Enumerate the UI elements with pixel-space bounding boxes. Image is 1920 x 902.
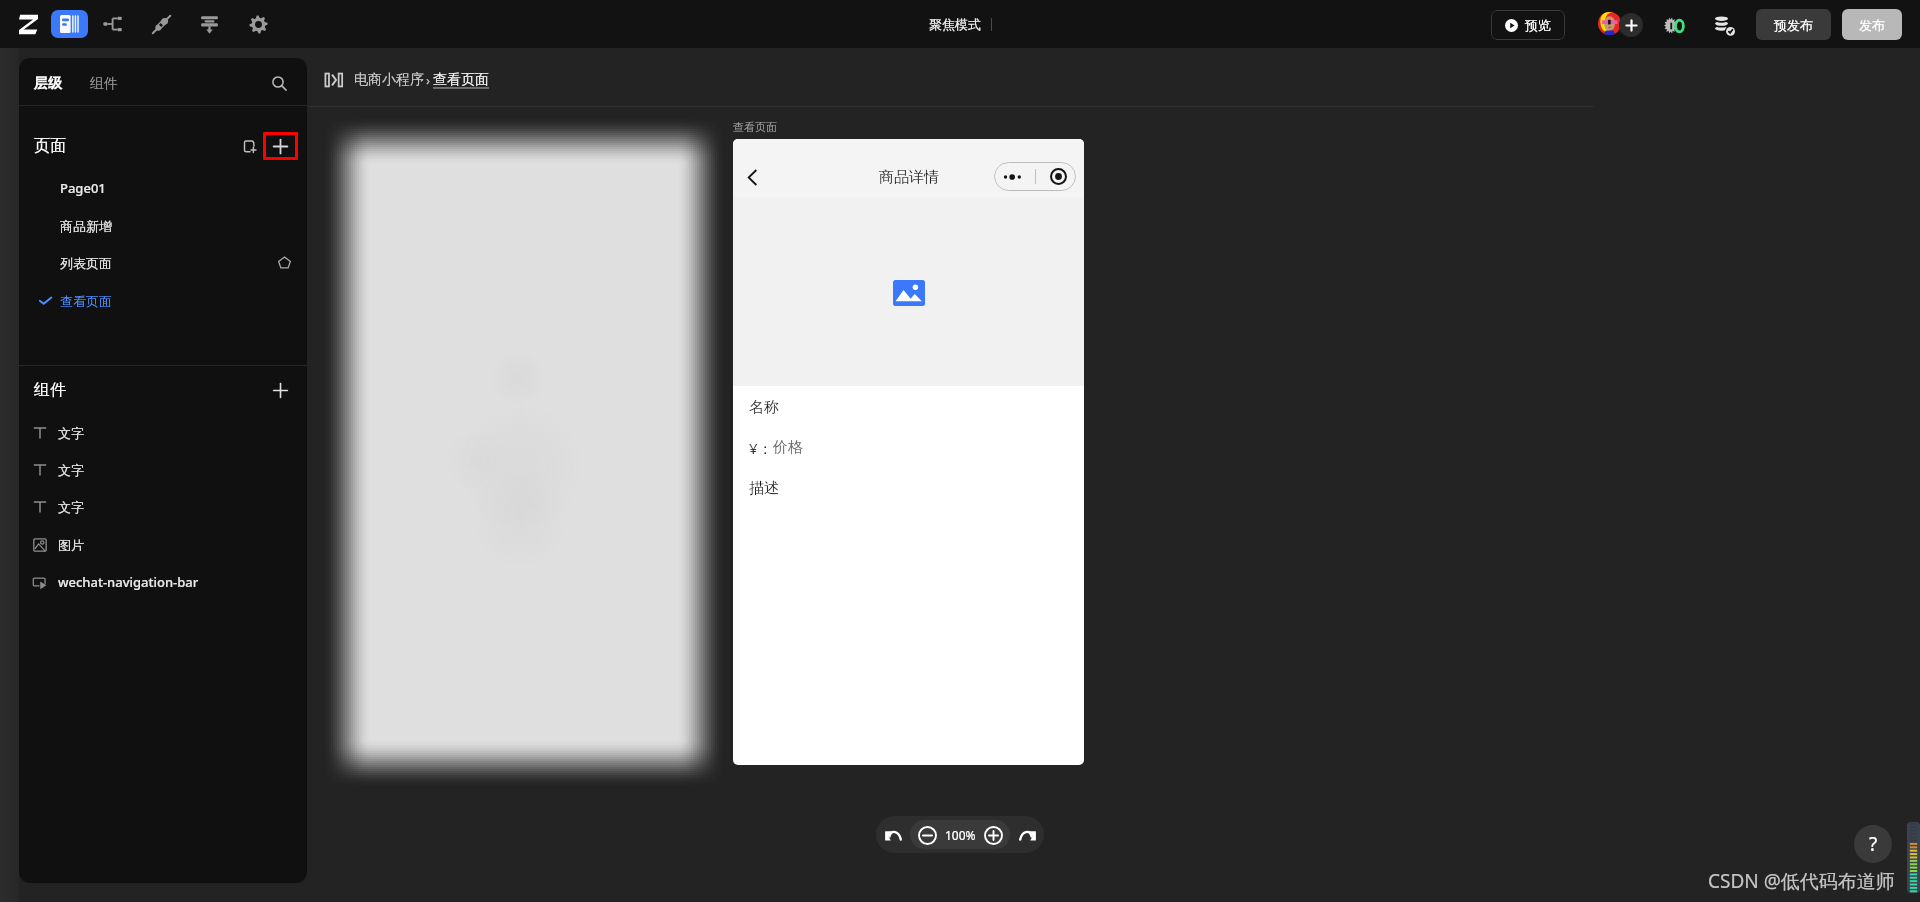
button[interactable]: wechat-navigation-bar xyxy=(19,563,307,600)
button[interactable]: 文字 xyxy=(19,451,307,488)
button[interactable]: Connections xyxy=(147,10,175,38)
button[interactable]: Members xyxy=(1598,12,1643,38)
staticText: 预览 xyxy=(1525,17,1551,33)
staticText: 文字 xyxy=(58,462,84,478)
staticText: ¥： xyxy=(749,438,773,458)
staticText: 组件 xyxy=(34,380,66,400)
staticText: Page01 xyxy=(60,179,106,197)
button[interactable]: 文字 xyxy=(19,488,307,525)
button[interactable]: 列表页面 xyxy=(19,244,307,281)
button[interactable]: Import page xyxy=(239,135,261,157)
staticText: 图片 xyxy=(58,537,84,553)
staticText: 发布 xyxy=(1859,17,1885,33)
button[interactable]: Undo xyxy=(876,816,910,853)
staticText: 100% xyxy=(945,827,976,843)
staticText: 聚焦模式 xyxy=(929,16,981,32)
staticText: 查看页面 xyxy=(733,120,777,134)
staticText: 组件 xyxy=(90,75,118,93)
staticText: 列表页面 xyxy=(60,255,112,271)
button[interactable]: Hierarchy xyxy=(99,10,127,38)
staticText: 名称 xyxy=(749,398,779,417)
button[interactable]: 层级 xyxy=(28,70,68,98)
staticText: 商品新增 xyxy=(60,218,112,234)
button[interactable]: Home xyxy=(15,9,41,39)
button[interactable]: Zoom in xyxy=(981,823,1005,847)
staticText: wechat-navigation-bar xyxy=(58,573,199,591)
staticText: 商品详情 xyxy=(879,168,939,187)
button[interactable]: Zoom out xyxy=(915,823,939,847)
button[interactable]: 预发布 xyxy=(1756,9,1831,40)
staticText: 价格 xyxy=(773,438,803,457)
button[interactable]: Settings xyxy=(244,10,272,38)
staticText: 查看页面 xyxy=(433,71,489,89)
staticText: › xyxy=(426,71,431,89)
button[interactable]: Page01 xyxy=(19,169,307,206)
button[interactable]: WeChat menu xyxy=(994,162,1076,191)
button[interactable]: 图片 xyxy=(19,526,307,563)
staticText: 层级 xyxy=(34,75,62,93)
staticText: 页面 xyxy=(34,136,66,156)
staticText: 文字 xyxy=(58,499,84,515)
button[interactable]: 查看页面 xyxy=(19,282,307,319)
staticText: ? xyxy=(1869,831,1878,857)
button[interactable]: 组件 xyxy=(84,70,124,98)
button[interactable]: 文字 xyxy=(19,414,307,451)
staticText: 描述 xyxy=(749,479,779,498)
staticText: 电商小程序 xyxy=(354,71,424,89)
button[interactable]: Add component xyxy=(267,377,293,403)
button[interactable]: Align xyxy=(195,10,223,38)
staticText: CSDN @低代码布道师 xyxy=(1708,868,1895,894)
staticText: 预发布 xyxy=(1774,17,1813,33)
button[interactable]: Search xyxy=(268,72,290,94)
staticText: 查看页面 xyxy=(60,293,112,309)
button[interactable]: Pages xyxy=(51,10,88,38)
staticText: 文字 xyxy=(58,425,84,441)
button[interactable]: Redo xyxy=(1010,816,1044,853)
button[interactable]: 商品新增 xyxy=(19,207,307,244)
button[interactable]: Add page xyxy=(263,132,298,160)
button[interactable]: 发布 xyxy=(1842,9,1902,40)
button[interactable]: Credits xyxy=(1663,13,1687,37)
button[interactable]: 预览 xyxy=(1491,10,1565,40)
button[interactable]: Data source xyxy=(1713,13,1737,37)
button[interactable]: Help xyxy=(1854,825,1892,863)
